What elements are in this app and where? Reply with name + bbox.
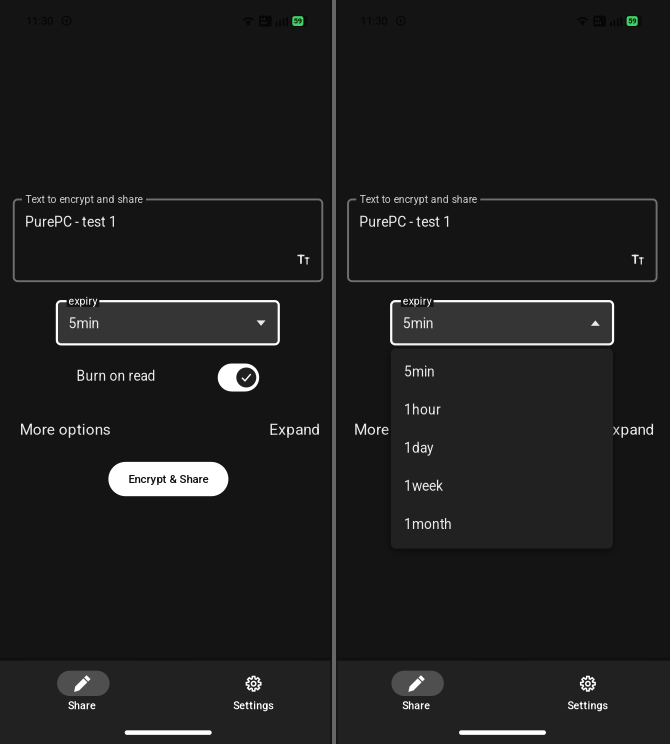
staticText: T (304, 257, 309, 267)
staticText: 59 (294, 17, 302, 25)
button[interactable]: 1hour (391, 391, 613, 429)
button[interactable]: Expand (574, 420, 654, 438)
staticText: T (639, 257, 644, 267)
staticText: Burn on read (411, 368, 490, 384)
staticText: PurePC - test 1 (25, 214, 117, 230)
staticText: 1day (404, 440, 433, 456)
button[interactable]: expiry (57, 301, 279, 344)
staticText: Settings (568, 699, 608, 712)
button[interactable]: Text formatting (297, 252, 309, 267)
button[interactable]: Expand (240, 420, 320, 438)
button[interactable]: 1month (391, 505, 613, 543)
button[interactable]: 1day (391, 429, 613, 467)
staticText: Expand (603, 420, 654, 438)
staticText: 1month (404, 516, 452, 532)
staticText: T (631, 252, 638, 267)
button[interactable]: Encrypt & Share (108, 462, 228, 496)
staticText: expiry (68, 295, 97, 307)
button[interactable]: Settings (533, 660, 643, 712)
staticText: More options (354, 420, 445, 438)
staticText: PurePC - test 1 (359, 214, 451, 230)
staticText: 11:30 (26, 14, 53, 27)
staticText: Share (68, 699, 96, 712)
staticText: 5min (68, 315, 99, 332)
staticText: Text to encrypt and share (25, 193, 142, 205)
button[interactable]: 1week (391, 467, 613, 505)
staticText: 1week (404, 478, 443, 494)
staticText: Expand (269, 420, 320, 438)
staticText: Share (402, 699, 430, 712)
button[interactable]: Text to encrypt and share (14, 199, 322, 281)
staticText: 1hour (404, 402, 441, 418)
staticText: expiry (403, 295, 432, 307)
staticText: T (297, 252, 304, 267)
staticText: 5min (403, 315, 434, 332)
staticText: More options (20, 420, 111, 438)
staticText: 5min (404, 364, 435, 380)
staticText: Burn on read (76, 368, 155, 384)
button[interactable]: Share (27, 660, 137, 712)
button[interactable]: Text formatting (631, 252, 644, 267)
button[interactable]: Share (361, 660, 471, 712)
staticText: 59 (628, 17, 636, 25)
staticText: 11:30 (360, 14, 387, 27)
button[interactable]: Text to encrypt and share (348, 199, 657, 281)
staticText: Settings (233, 699, 273, 712)
staticText: Encrypt & Share (128, 472, 208, 486)
button[interactable]: expiry (391, 301, 613, 344)
button[interactable]: Settings (198, 660, 308, 712)
button[interactable]: Burn on read (218, 363, 259, 391)
button[interactable]: 5min (391, 353, 613, 391)
staticText: Text to encrypt and share (360, 193, 477, 205)
